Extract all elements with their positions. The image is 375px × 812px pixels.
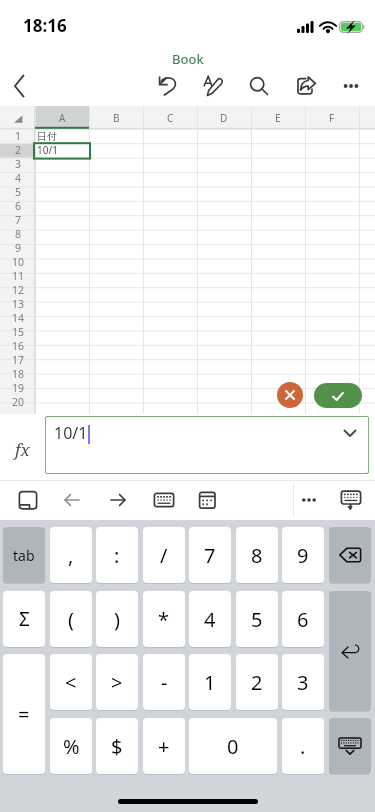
button[interactable]: More options [331,66,371,106]
button[interactable]: 3 [0,157,35,171]
button[interactable]: More [290,481,328,519]
button[interactable]: 7 [0,213,35,227]
button[interactable]: , [50,527,92,583]
staticText: B [113,111,120,125]
button[interactable]: 4 [189,591,231,647]
button[interactable]: ( [50,591,92,647]
button[interactable]: 18 [0,367,35,381]
button[interactable]: 8 [0,227,35,241]
button[interactable]: Backspace [329,527,371,583]
button[interactable]: 9 [282,527,324,583]
button[interactable]: - [143,654,185,710]
button[interactable]: Undo [148,66,188,106]
button[interactable]: 10 [0,255,35,269]
button[interactable]: Back [0,66,40,106]
button[interactable]: 19 [0,381,35,395]
staticText: 18 [12,367,25,381]
button[interactable]: 5 [0,185,35,199]
staticText: 9 [297,542,309,569]
button[interactable]: C [143,106,197,129]
button[interactable]: Cancel [277,382,303,408]
staticText: 3 [15,157,22,171]
staticText: ) [114,606,120,633]
button[interactable]: 6 [0,199,35,213]
staticText: - [161,669,168,696]
button[interactable]: Enter [329,591,371,711]
button[interactable]: Confirm [314,383,362,408]
button[interactable]: > [96,654,138,710]
button[interactable]: Hide keyboard [329,718,371,774]
staticText: F [329,111,335,125]
staticText: 10/1 [54,422,88,444]
staticText: 4 [204,606,216,633]
button[interactable]: : [96,527,138,583]
button[interactable]: Sheets [9,481,47,519]
button[interactable]: + [143,718,185,774]
staticText: D [220,111,228,125]
button[interactable]: 11 [0,269,35,283]
button[interactable]: 10/1 [45,416,369,474]
button[interactable]: Functions [6,433,38,465]
staticText: E [275,111,281,125]
button[interactable]: 7 [189,527,231,583]
staticText: 12 [12,283,25,297]
button[interactable]: 13 [0,297,35,311]
staticText: 9 [15,241,22,255]
staticText: 5 [15,185,22,199]
button[interactable]: B [89,106,143,129]
staticText: 1 [204,669,216,696]
staticText: 1 [15,129,22,143]
button[interactable]: 6 [282,591,324,647]
button[interactable]: Σ [3,591,45,647]
staticText: 3 [297,669,309,696]
button[interactable]: < [50,654,92,710]
staticText: 10 [12,255,25,269]
button[interactable]: / [143,527,185,583]
staticText: tab [13,546,35,565]
button[interactable]: Share [286,66,326,106]
button[interactable]: Search [239,66,279,106]
button[interactable]: . [282,718,324,774]
button[interactable]: ) [96,591,138,647]
button[interactable]: % [50,718,92,774]
button[interactable]: 3 [282,654,324,710]
button[interactable]: = [3,654,45,774]
button[interactable]: Previous [53,481,91,519]
button[interactable]: * [143,591,185,647]
button[interactable]: 20 [0,395,35,409]
button[interactable]: 14 [0,311,35,325]
button[interactable]: 2 [236,654,278,710]
staticText: 4 [15,171,22,185]
button[interactable]: 5 [236,591,278,647]
staticText: * [158,606,170,633]
button[interactable]: 16 [0,339,35,353]
staticText: 6 [297,606,309,633]
button[interactable]: F [305,106,359,129]
button[interactable]: Hide keyboard [331,481,369,519]
button[interactable]: Number pad [188,481,226,519]
staticText: 0 [227,733,239,760]
button[interactable]: D [197,106,251,129]
button[interactable]: 15 [0,325,35,339]
staticText: , [68,542,74,569]
staticText: ( [68,606,74,633]
button[interactable]: tab [3,527,45,583]
button[interactable]: A [35,106,89,129]
staticText: $ [111,733,123,760]
button[interactable]: 8 [236,527,278,583]
staticText: : [114,542,120,569]
button[interactable]: Next [99,481,137,519]
staticText: 17 [12,353,25,367]
button[interactable]: $ [96,718,138,774]
button[interactable]: 0 [189,718,277,774]
button[interactable]: 1 [189,654,231,710]
button[interactable]: 2 [0,143,35,157]
button[interactable]: Format text [193,66,233,106]
button[interactable]: 1 [0,129,35,143]
button[interactable]: 17 [0,353,35,367]
button[interactable]: Keyboard [144,481,182,519]
button[interactable]: 9 [0,241,35,255]
button[interactable]: 12 [0,283,35,297]
button[interactable]: E [251,106,305,129]
button[interactable]: 4 [0,171,35,185]
